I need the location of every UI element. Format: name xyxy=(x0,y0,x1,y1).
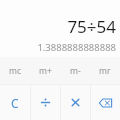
button[interactable]: m+ xyxy=(30,57,60,84)
staticText: 75÷54 xyxy=(67,15,116,38)
staticText: mr xyxy=(99,65,111,77)
staticText: C xyxy=(11,95,19,111)
button[interactable]: Backspace xyxy=(91,85,120,120)
button[interactable]: mc xyxy=(0,57,30,84)
button[interactable]: C xyxy=(0,85,30,120)
staticText: 1.3888888888888 xyxy=(37,41,116,54)
button[interactable]: Divide xyxy=(31,85,60,120)
staticText: mc xyxy=(9,65,22,77)
button[interactable]: Multiply xyxy=(61,85,90,120)
button[interactable]: m- xyxy=(60,57,90,84)
button[interactable]: mr xyxy=(90,57,120,84)
staticText: m+ xyxy=(39,65,52,77)
staticText: m- xyxy=(70,65,81,77)
